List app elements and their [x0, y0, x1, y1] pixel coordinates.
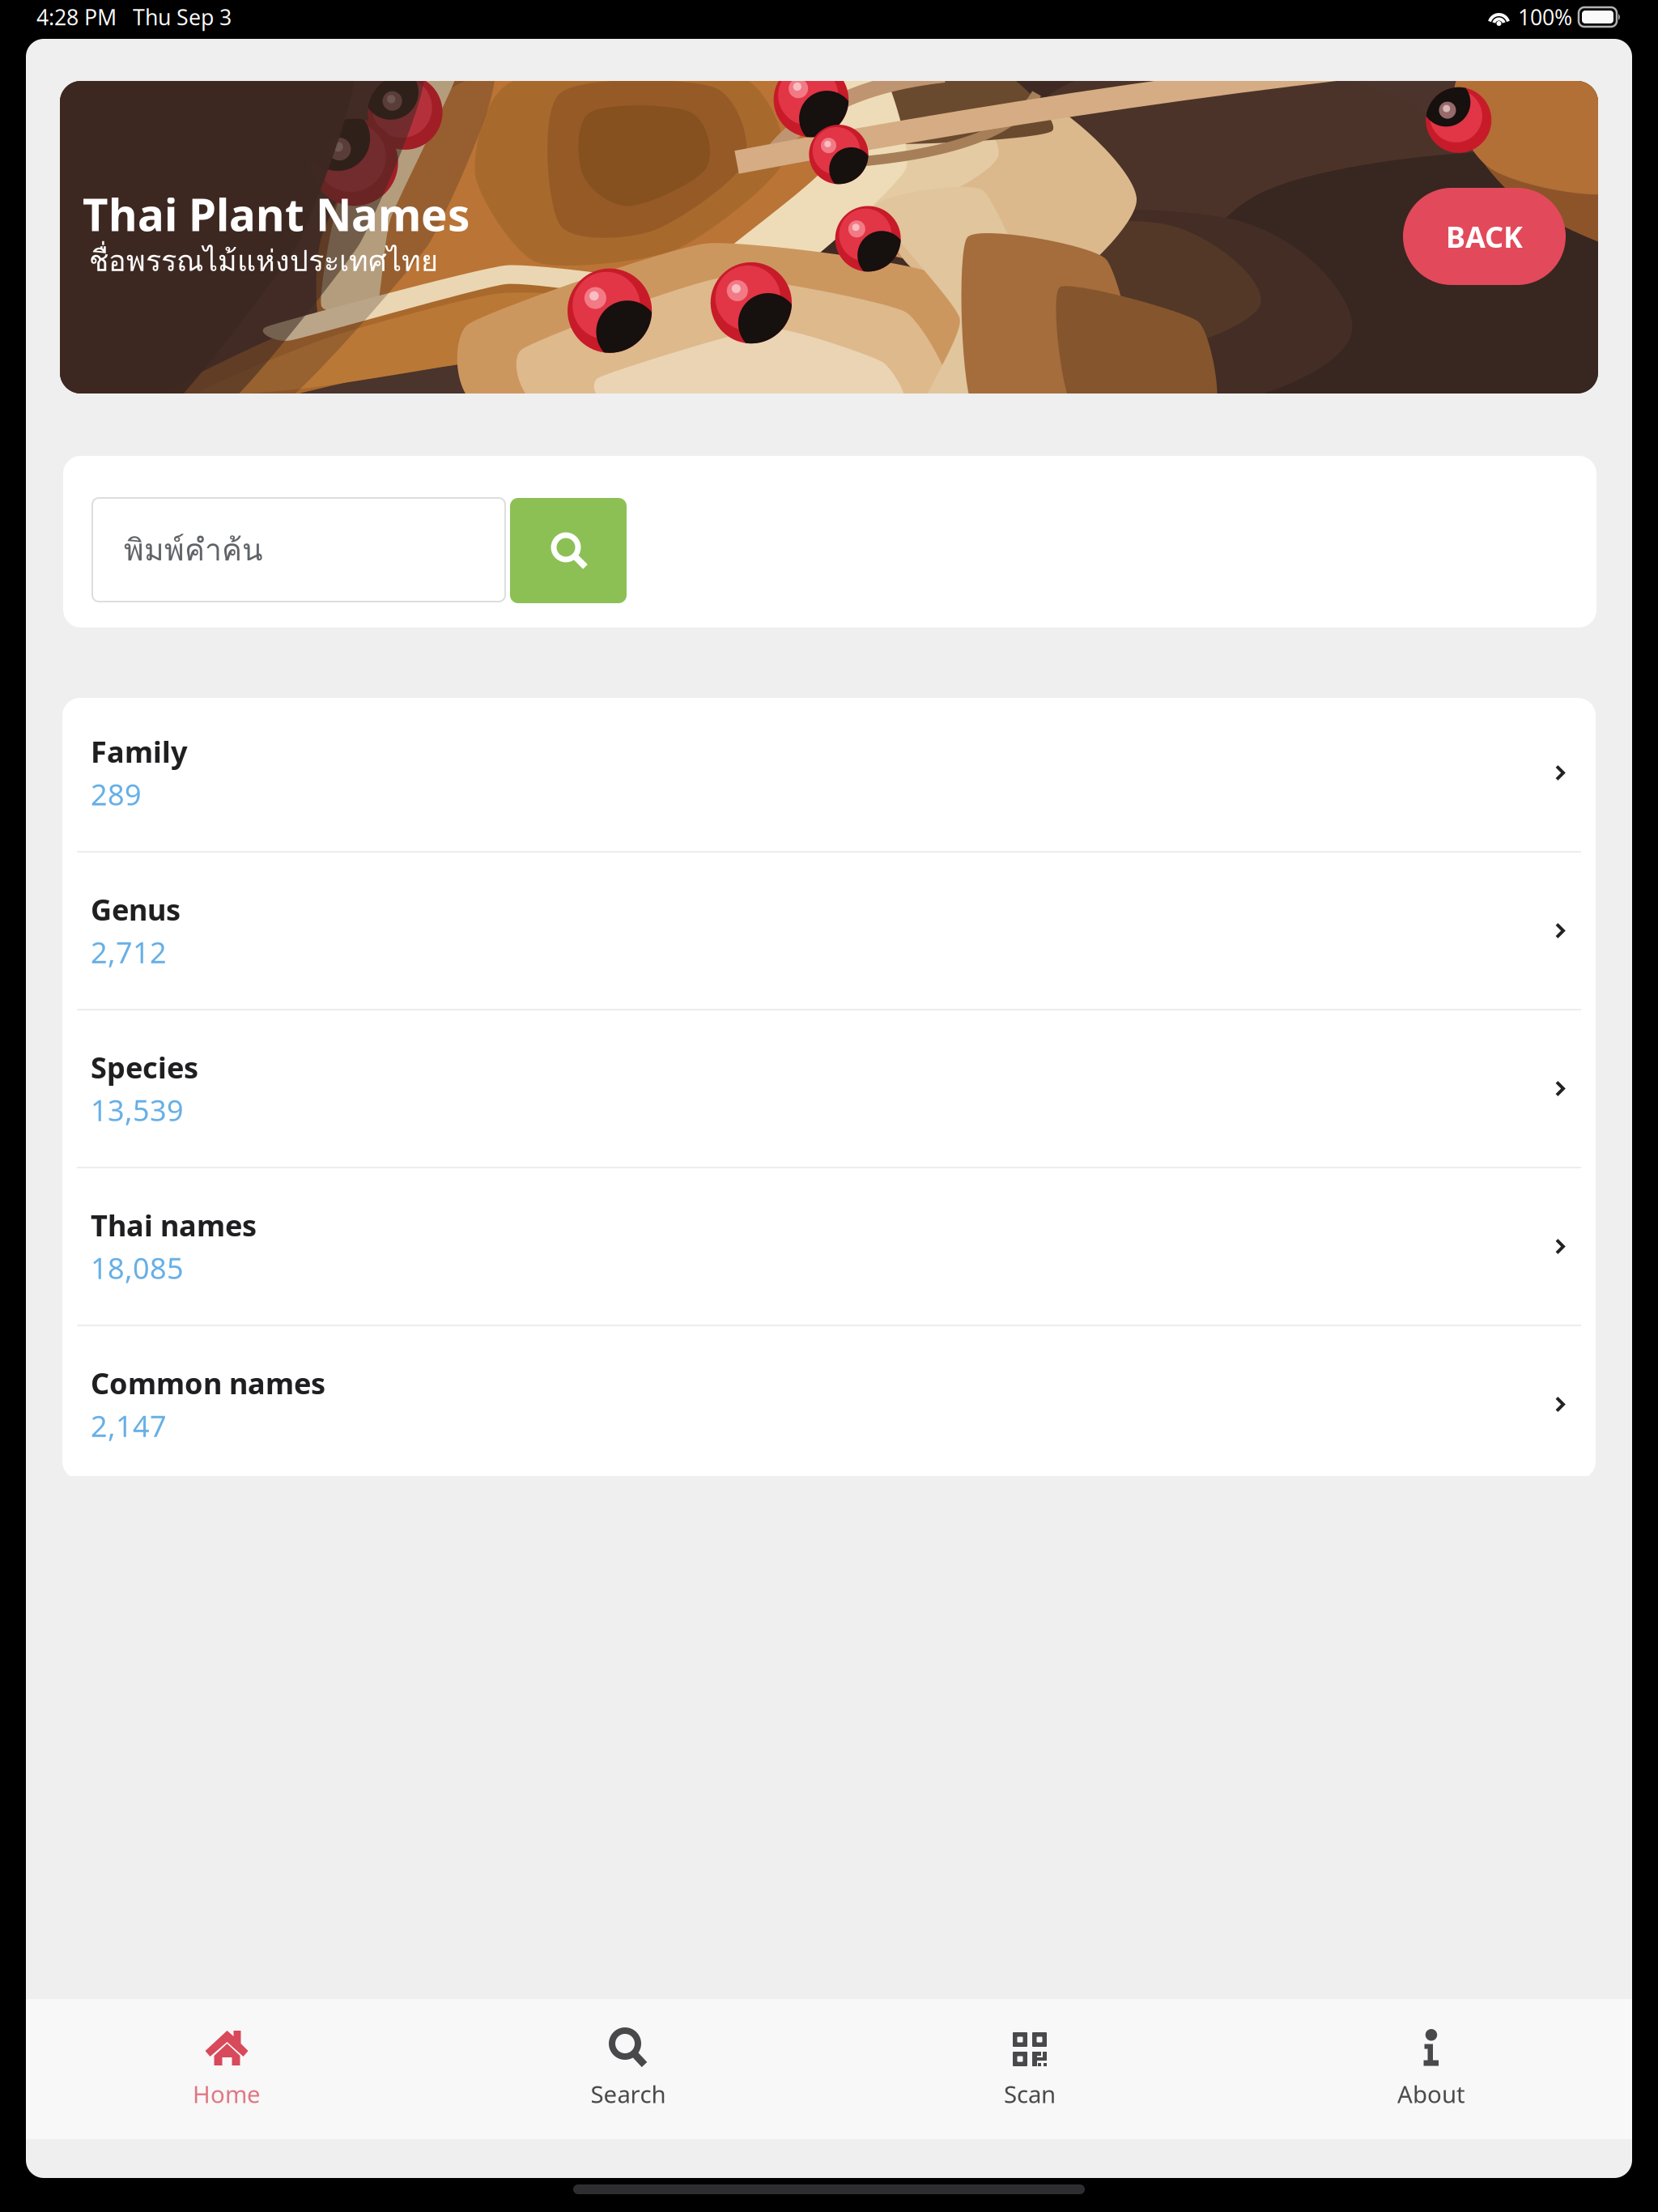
staticText: Species [91, 1048, 198, 1087]
staticText: Family [91, 732, 188, 771]
staticText: BACK [1446, 217, 1523, 256]
button[interactable]: Family [62, 695, 1596, 851]
staticText: Thai names [91, 1206, 257, 1244]
staticText: 2,147 [91, 1406, 167, 1445]
button[interactable]: BACK [1403, 188, 1566, 285]
staticText: Genus [91, 890, 181, 929]
button[interactable]: About [1231, 1999, 1632, 2139]
button[interactable]: Thai names [62, 1168, 1596, 1325]
button[interactable]: Search [510, 498, 627, 603]
button[interactable]: Common names [62, 1326, 1596, 1482]
staticText: Thai Plant Names [83, 185, 470, 243]
staticText: About [1397, 2078, 1465, 2110]
button[interactable]: Species [62, 1010, 1596, 1167]
staticText: 13,539 [91, 1091, 184, 1129]
button[interactable]: Scan [829, 1999, 1231, 2139]
button[interactable]: Home [26, 1999, 427, 2139]
staticText: Scan [1004, 2078, 1056, 2110]
staticText: 4:28 PM [36, 3, 117, 31]
staticText: 2,712 [91, 933, 167, 971]
staticText: 18,085 [91, 1249, 184, 1287]
button[interactable]: Genus [62, 853, 1596, 1009]
staticText: พิมพ์คำค้น [124, 526, 263, 573]
staticText: Home [193, 2078, 261, 2110]
staticText: Thu Sep 3 [133, 3, 232, 31]
button[interactable]: Search [427, 1999, 829, 2139]
staticText: 289 [91, 775, 142, 814]
staticText: 100% [1518, 3, 1572, 31]
staticText: Common names [91, 1364, 325, 1402]
staticText: ชื่อพรรณไม้แห่งประเทศไทย [89, 238, 438, 283]
staticText: Search [591, 2078, 666, 2110]
